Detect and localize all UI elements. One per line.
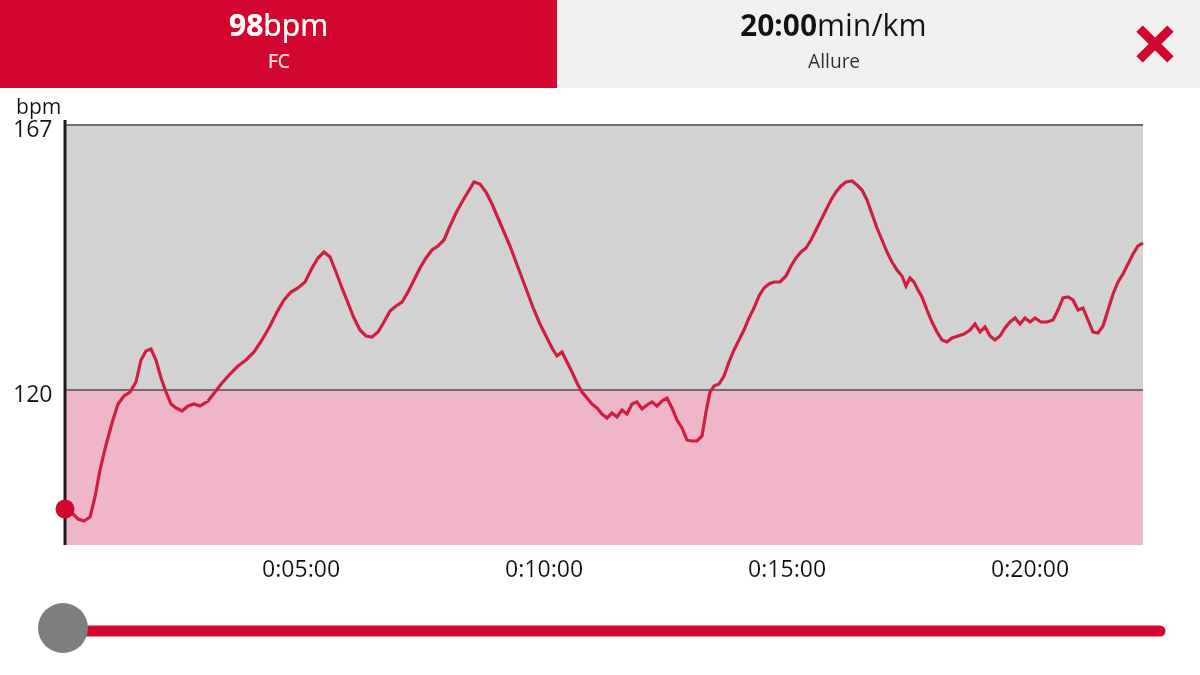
staticText: 120 — [13, 377, 53, 408]
staticText: 167 — [13, 112, 53, 143]
staticText: 0:05:00 — [262, 552, 341, 583]
staticText: 0:15:00 — [748, 552, 827, 583]
button[interactable]: Close — [1127, 16, 1183, 72]
staticText: bpm — [16, 92, 62, 121]
staticText: FC — [268, 48, 290, 74]
button[interactable]: 98bpm — [0, 0, 557, 88]
staticText: 98bpm — [229, 4, 329, 45]
staticText: 20:00min/km — [740, 4, 927, 45]
button[interactable]: Timeline position — [0, 545, 1200, 675]
staticText: 0:10:00 — [505, 552, 584, 583]
staticText: Allure — [808, 48, 860, 74]
button[interactable]: 20:00min/km — [557, 0, 1200, 88]
staticText: 0:20:00 — [991, 552, 1070, 583]
